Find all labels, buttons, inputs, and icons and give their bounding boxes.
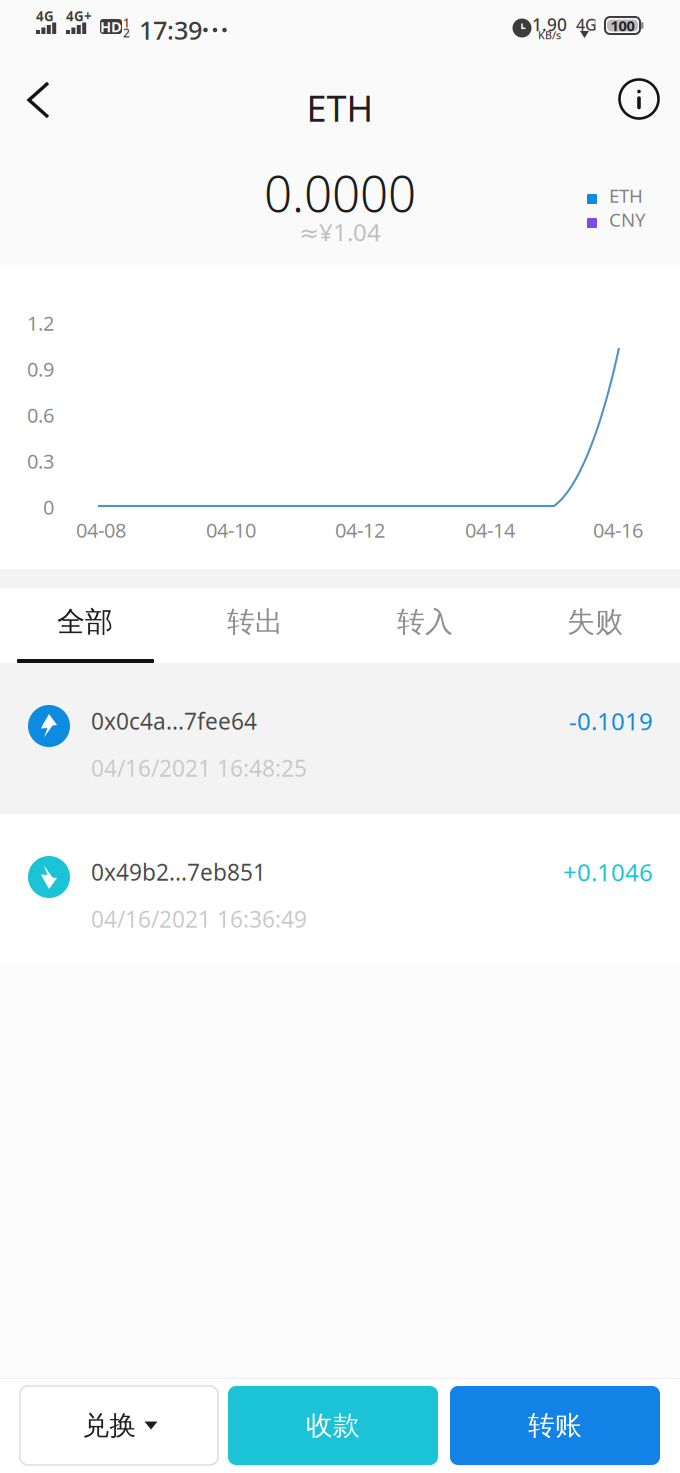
- staticText: 4G+: [66, 7, 92, 25]
- staticText: 转入: [397, 605, 453, 639]
- staticText: 04-10: [206, 517, 256, 543]
- staticText: 100: [610, 16, 634, 35]
- staticText: 1: [123, 15, 130, 31]
- staticText: 04/16/2021 16:48:25: [91, 753, 307, 783]
- button[interactable]: 转账: [450, 1386, 660, 1465]
- staticText: HD: [100, 17, 122, 36]
- staticText: 0.6: [27, 402, 54, 428]
- staticText: 04-12: [335, 517, 385, 543]
- staticText: 全部: [57, 605, 113, 639]
- staticText: 2: [123, 25, 130, 41]
- staticText: 04-14: [465, 517, 515, 543]
- button[interactable]: 转出: [170, 588, 340, 663]
- staticText: +0.1046: [563, 856, 653, 888]
- staticText: KB/s: [538, 28, 561, 42]
- staticText: -0.1019: [569, 705, 653, 737]
- staticText: 4G: [576, 14, 597, 35]
- button[interactable]: 兑换: [20, 1386, 218, 1465]
- staticText: ETH: [306, 84, 373, 132]
- staticText: 转出: [227, 605, 283, 639]
- staticText: ≈¥1.04: [299, 216, 381, 248]
- staticText: 0x0c4a...7fee64: [91, 706, 257, 736]
- button[interactable]: 转入: [340, 588, 510, 663]
- staticText: 17:39: [139, 13, 202, 47]
- staticText: 04-16: [593, 517, 643, 543]
- staticText: 转账: [528, 1409, 582, 1442]
- button[interactable]: 0x0c4a...7fee64: [0, 663, 680, 814]
- staticText: 0.0000: [264, 160, 416, 225]
- staticText: 1.90: [532, 13, 567, 36]
- button[interactable]: 0x49b2...7eb851: [0, 814, 680, 963]
- staticText: 失败: [567, 605, 623, 639]
- staticText: 04/16/2021 16:36:49: [91, 904, 307, 934]
- button[interactable]: 全部: [0, 588, 170, 663]
- staticText: 0x49b2...7eb851: [91, 857, 266, 887]
- button[interactable]: 失败: [510, 588, 680, 663]
- staticText: 0.9: [27, 356, 54, 382]
- staticText: 1: [592, 16, 597, 28]
- button[interactable]: Back: [4, 62, 70, 136]
- staticText: 兑换: [82, 1409, 136, 1442]
- staticText: 0.3: [27, 448, 54, 474]
- button[interactable]: Info: [606, 62, 672, 136]
- button[interactable]: 收款: [228, 1386, 438, 1465]
- staticText: 04-08: [76, 517, 126, 543]
- staticText: 0: [43, 494, 54, 520]
- staticText: 4G: [36, 7, 54, 25]
- staticText: 收款: [306, 1409, 360, 1442]
- staticText: ETH: [609, 183, 643, 208]
- staticText: CNY: [609, 207, 646, 232]
- staticText: 1.2: [27, 310, 54, 336]
